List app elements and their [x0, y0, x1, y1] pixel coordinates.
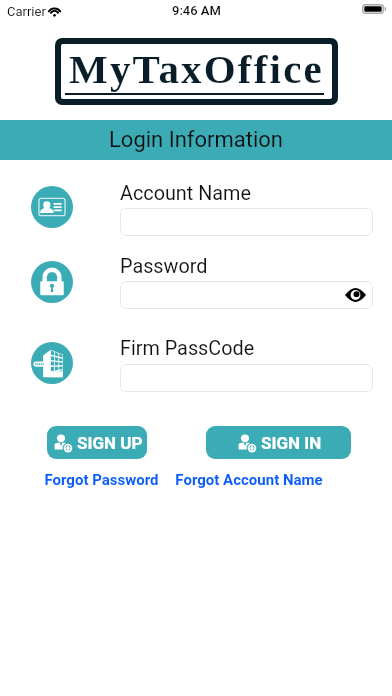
- staticText: Carrier: [7, 4, 46, 19]
- staticText: Account Name: [120, 182, 251, 205]
- staticText: Forgot Account Name: [175, 471, 323, 489]
- staticText: Forgot Password: [44, 471, 159, 489]
- staticText: Login Information: [109, 127, 283, 153]
- button[interactable]: [120, 208, 373, 236]
- button[interactable]: Firm passcode: [31, 342, 73, 384]
- button[interactable]: SIGN UP: [47, 426, 147, 459]
- button[interactable]: [120, 364, 373, 392]
- staticText: Password: [120, 255, 208, 278]
- button[interactable]: Show password: [120, 281, 373, 309]
- staticText: Firm PassCode: [120, 337, 255, 360]
- button[interactable]: SIGN IN: [206, 426, 351, 459]
- staticText: SIGN IN: [261, 433, 322, 453]
- button[interactable]: Show password: [343, 285, 367, 305]
- button[interactable]: Forgot Password: [44, 471, 159, 489]
- staticText: 9:46 AM: [172, 3, 221, 18]
- staticText: MyTaxOffice: [69, 46, 324, 91]
- button[interactable]: Account name: [31, 186, 73, 228]
- button[interactable]: Forgot Account Name: [175, 471, 323, 489]
- staticText: SIGN UP: [77, 433, 143, 453]
- button[interactable]: Password: [31, 261, 73, 303]
